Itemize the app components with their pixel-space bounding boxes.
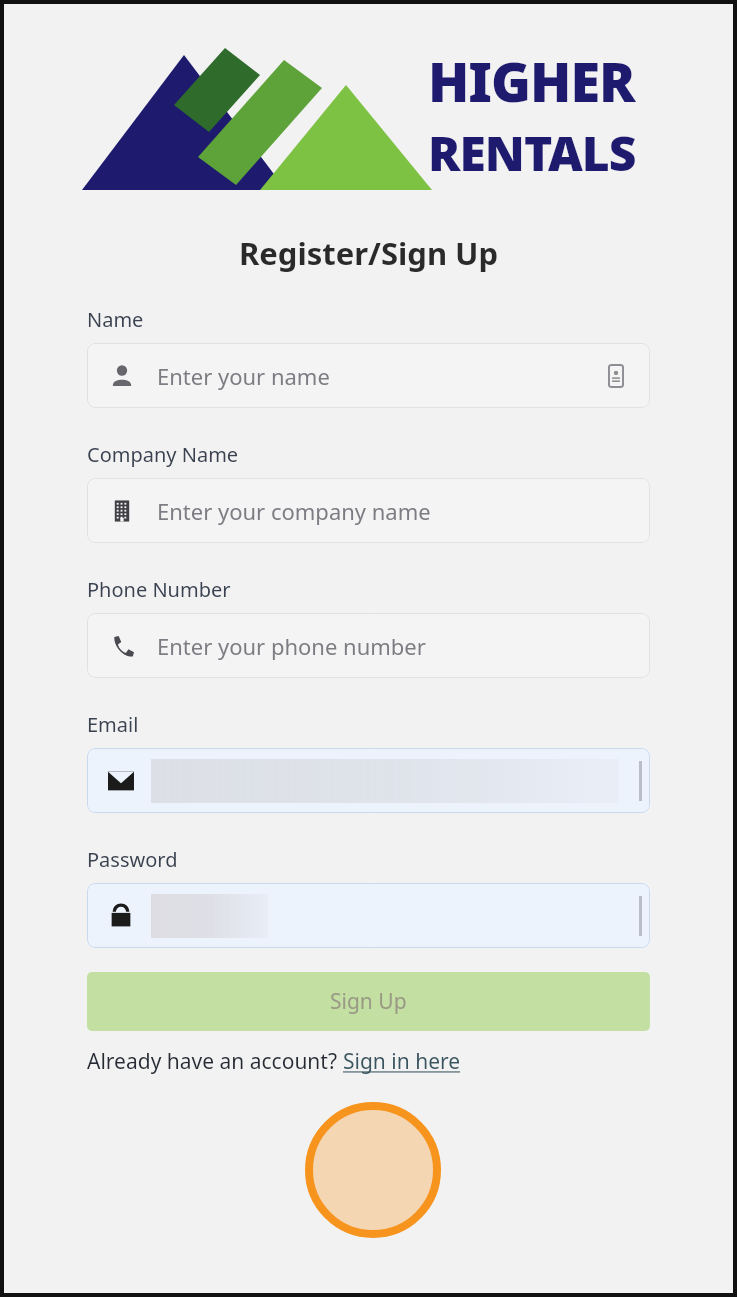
staticText: Enter your phone number bbox=[157, 631, 426, 661]
button[interactable]: Enter your phone number bbox=[87, 613, 650, 678]
staticText: RENTALS bbox=[428, 120, 636, 185]
staticText: Sign Up bbox=[330, 987, 407, 1016]
button[interactable]: Sign Up bbox=[87, 972, 650, 1031]
staticText: Enter your name bbox=[157, 361, 330, 391]
staticText: Company Name bbox=[87, 441, 239, 468]
staticText: Sign in here bbox=[343, 1047, 461, 1076]
other: Autofill contact bbox=[604, 364, 628, 388]
button[interactable]: Enter your name bbox=[87, 343, 650, 408]
button[interactable]: Enter your company name bbox=[87, 478, 650, 543]
staticText: Phone Number bbox=[87, 576, 231, 603]
staticText: Password bbox=[87, 846, 178, 873]
staticText: Already have an account? bbox=[87, 1047, 343, 1076]
staticText: HIGHER bbox=[428, 44, 635, 118]
staticText: Register/Sign Up bbox=[239, 232, 499, 274]
staticText: Name bbox=[87, 306, 144, 333]
button[interactable] bbox=[87, 883, 650, 948]
staticText: Email bbox=[87, 711, 139, 738]
staticText: Enter your company name bbox=[157, 496, 431, 526]
button[interactable]: Sign in here bbox=[343, 1047, 461, 1076]
button[interactable] bbox=[87, 748, 650, 813]
